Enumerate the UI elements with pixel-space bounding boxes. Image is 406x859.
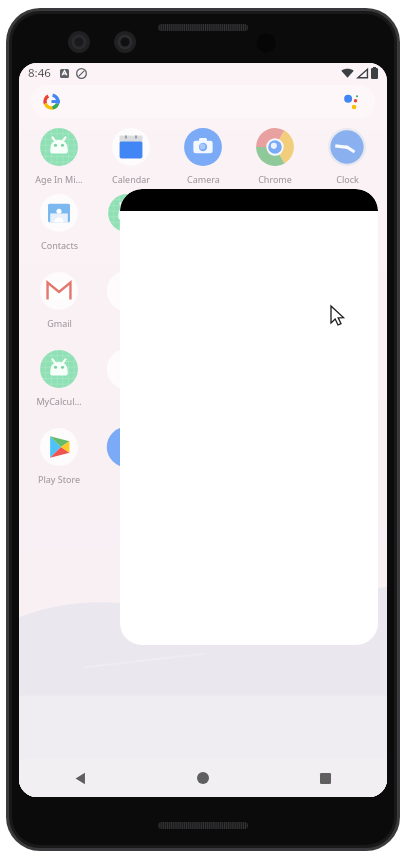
staticText: Play Store <box>38 473 80 485</box>
button[interactable]: Chrome <box>241 125 309 185</box>
button[interactable]: Search <box>31 85 375 118</box>
button[interactable]: S <box>93 347 161 407</box>
staticText: Camera <box>187 173 220 185</box>
button[interactable] <box>120 189 378 645</box>
button[interactable]: Contacts <box>25 191 93 251</box>
button[interactable]: Recents <box>264 759 387 797</box>
staticText: Contacts <box>41 239 78 251</box>
button[interactable]: S <box>93 269 161 329</box>
staticText: Clock <box>336 173 359 185</box>
staticText: Gmail <box>47 317 72 329</box>
button[interactable]: Camera <box>169 125 237 185</box>
staticText: MyCalcul… <box>36 395 82 407</box>
staticText: 8:46 <box>28 65 51 81</box>
staticText: Chrome <box>258 173 292 185</box>
button[interactable]: Back <box>19 759 141 797</box>
button[interactable]: Clock <box>313 125 381 185</box>
staticText: Age In Mi… <box>35 173 83 185</box>
button[interactable]: Play Store <box>25 425 93 485</box>
button[interactable]: Home <box>141 759 264 797</box>
button[interactable]: Age In Mi… <box>25 125 93 185</box>
staticText: Calendar <box>112 173 150 185</box>
button[interactable]: MyCalcul… <box>25 347 93 407</box>
button[interactable]: S <box>93 425 161 485</box>
button[interactable]: Calendar <box>97 125 165 185</box>
button[interactable]: S <box>93 191 161 251</box>
button[interactable]: Gmail <box>25 269 93 329</box>
